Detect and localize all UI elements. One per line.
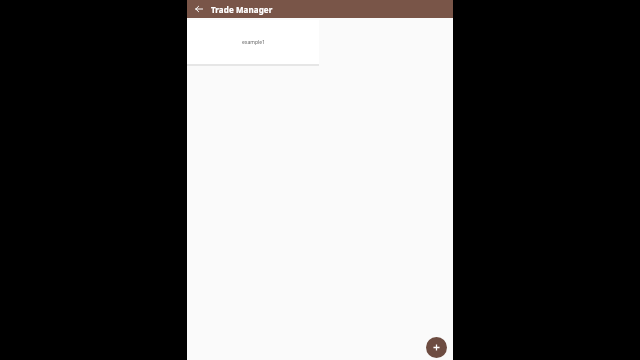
button[interactable]: example1 [187,20,319,65]
button[interactable]: Add trade [426,337,447,358]
button[interactable]: Navigate up [191,1,207,17]
staticText: example1 [242,39,265,46]
staticText: Trade Manager [211,4,273,15]
